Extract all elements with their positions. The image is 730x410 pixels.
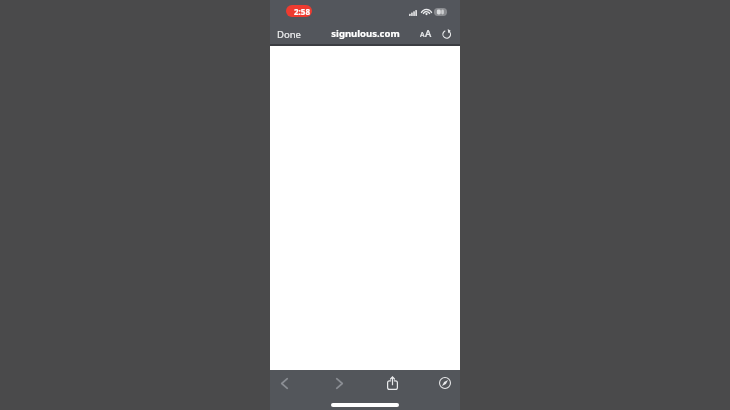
button[interactable]: Page settings — [417, 25, 435, 42]
staticText: 2:58 — [294, 6, 310, 17]
staticText: A — [425, 27, 432, 40]
button[interactable]: signulous.com — [323, 25, 408, 44]
button[interactable]: Reload — [439, 26, 454, 41]
staticText: A — [420, 30, 425, 40]
button[interactable]: Screen recording, 2:58 — [286, 5, 312, 17]
button[interactable]: Open in Safari — [435, 373, 455, 393]
staticText: signulous.com — [331, 27, 400, 40]
button[interactable]: Share — [382, 372, 402, 394]
staticText: Done — [277, 28, 301, 41]
button[interactable]: Back — [274, 373, 294, 393]
button[interactable]: Forward — [329, 373, 349, 393]
button[interactable]: Done — [273, 25, 305, 44]
